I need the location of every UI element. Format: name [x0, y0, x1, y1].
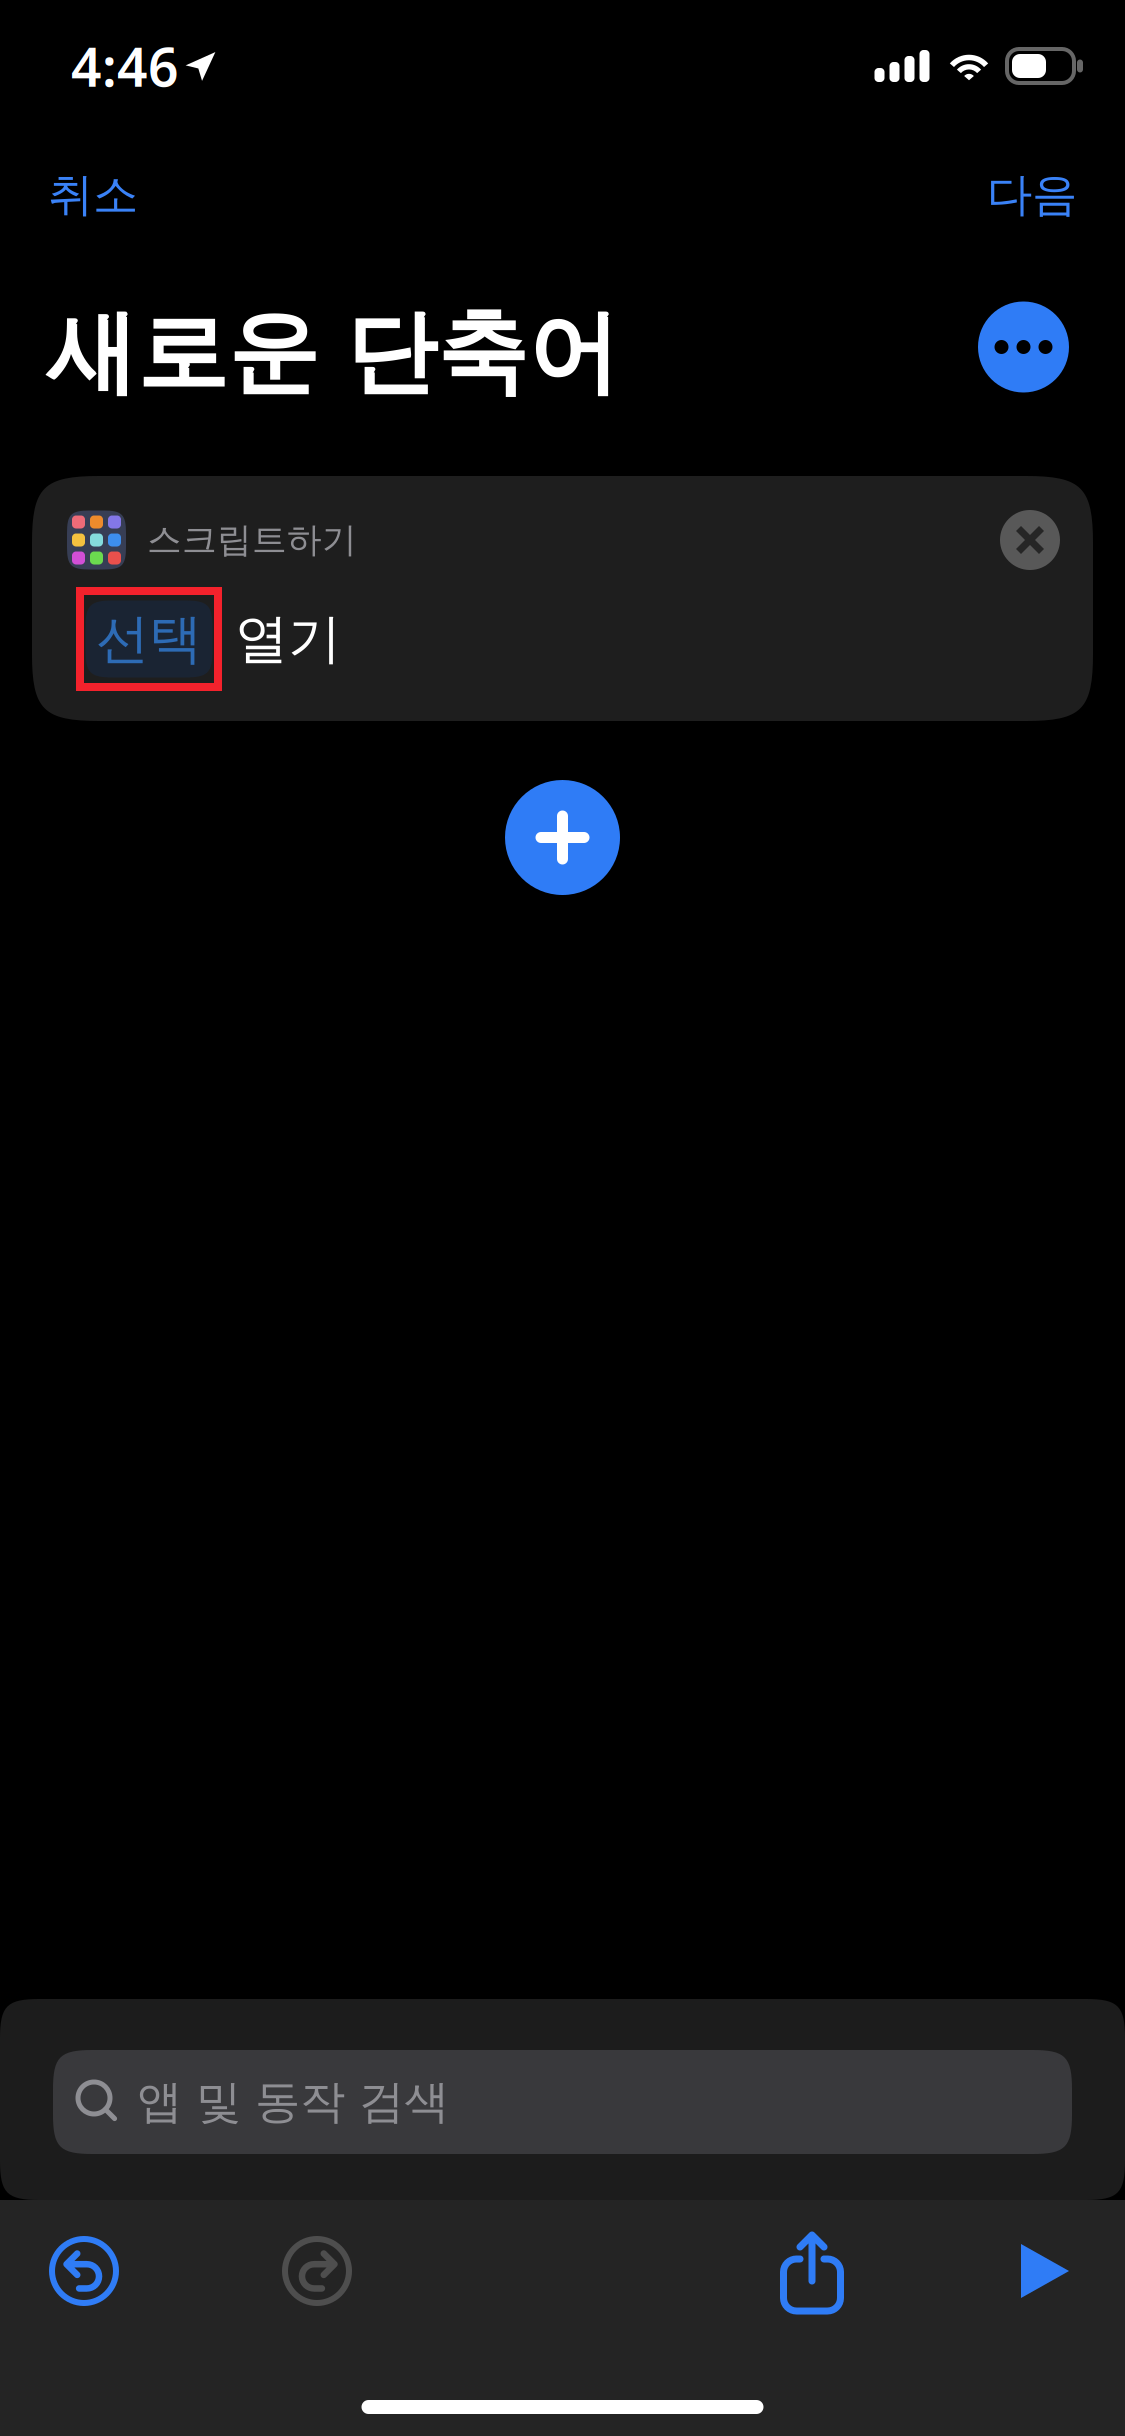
- staticText: 스크립트하기: [147, 519, 357, 561]
- staticText: 새로운 단축어: [46, 297, 619, 409]
- staticText: 앱 및 동작 검색: [137, 2074, 449, 2130]
- button[interactable]: 취소: [38, 155, 148, 235]
- button[interactable]: Redo: [282, 2236, 352, 2306]
- button[interactable]: Undo: [49, 2236, 119, 2306]
- button[interactable]: Add action: [505, 780, 620, 895]
- button[interactable]: 앱 및 동작 검색: [53, 2050, 1072, 2154]
- button[interactable]: Run: [1021, 2244, 1069, 2298]
- button[interactable]: 스크립트하기: [32, 476, 1093, 721]
- staticText: 선택: [96, 606, 202, 672]
- staticText: 다음: [987, 167, 1077, 223]
- staticText: 취소: [48, 167, 138, 223]
- staticText: 열기: [235, 606, 341, 672]
- staticText: 4:46: [71, 31, 179, 101]
- button[interactable]: 다음: [977, 155, 1087, 235]
- button[interactable]: Share: [777, 2231, 847, 2311]
- button[interactable]: More options: [978, 301, 1069, 392]
